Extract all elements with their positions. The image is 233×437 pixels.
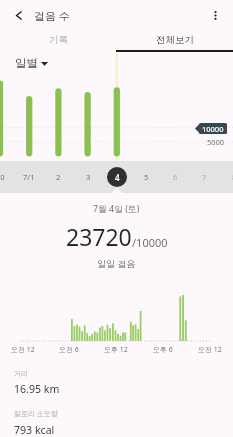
button[interactable]: 2 [46, 167, 70, 187]
staticText: 4 [115, 172, 120, 183]
staticText: 793 kcal [14, 423, 55, 437]
staticText: 거리 [14, 369, 28, 378]
staticText: 6 [173, 172, 178, 182]
button[interactable]: 전체보기 [116, 28, 233, 52]
staticText: 전체보기 [156, 34, 194, 46]
staticText: 23720 [66, 221, 132, 252]
staticText: 오전 6 [59, 345, 79, 355]
button[interactable]: 4 [107, 167, 127, 187]
button[interactable]: 7/1 [17, 167, 41, 187]
button[interactable]: Back [4, 0, 34, 30]
staticText: 일일 걸음 [97, 257, 136, 269]
staticText: 16.95 km [14, 382, 60, 396]
staticText: 2 [56, 172, 61, 182]
staticText: 오전 12 [11, 345, 35, 355]
staticText: 30 [0, 172, 5, 182]
staticText: 5000 [207, 137, 225, 147]
button[interactable]: More options [200, 0, 230, 30]
staticText: 8 [232, 172, 233, 182]
staticText: 7 [202, 172, 207, 182]
button[interactable]: 일별 [15, 56, 48, 70]
staticText: 기록 [49, 34, 68, 46]
staticText: 3 [86, 172, 91, 182]
staticText: 칼로리 소모량 [14, 409, 58, 419]
button[interactable]: 30 [0, 167, 12, 187]
staticText: 일별 [15, 56, 38, 70]
button[interactable]: 기록 [0, 28, 116, 52]
staticText: 7/1 [23, 172, 35, 182]
button[interactable]: 7 [192, 167, 216, 187]
staticText: 10000 [202, 124, 224, 134]
button[interactable]: 8 [222, 167, 233, 187]
staticText: 5 [144, 172, 149, 182]
staticText: /10000 [132, 235, 168, 250]
staticText: 7월 4일 (토) [93, 203, 140, 215]
staticText: 걸음 수 [34, 8, 70, 23]
button[interactable]: 6 [163, 167, 187, 187]
staticText: 오후 6 [153, 345, 173, 355]
button[interactable]: 5 [134, 167, 158, 187]
button[interactable]: 3 [76, 167, 100, 187]
staticText: 오후 12 [104, 345, 128, 355]
staticText: 오전 12 [198, 345, 222, 355]
